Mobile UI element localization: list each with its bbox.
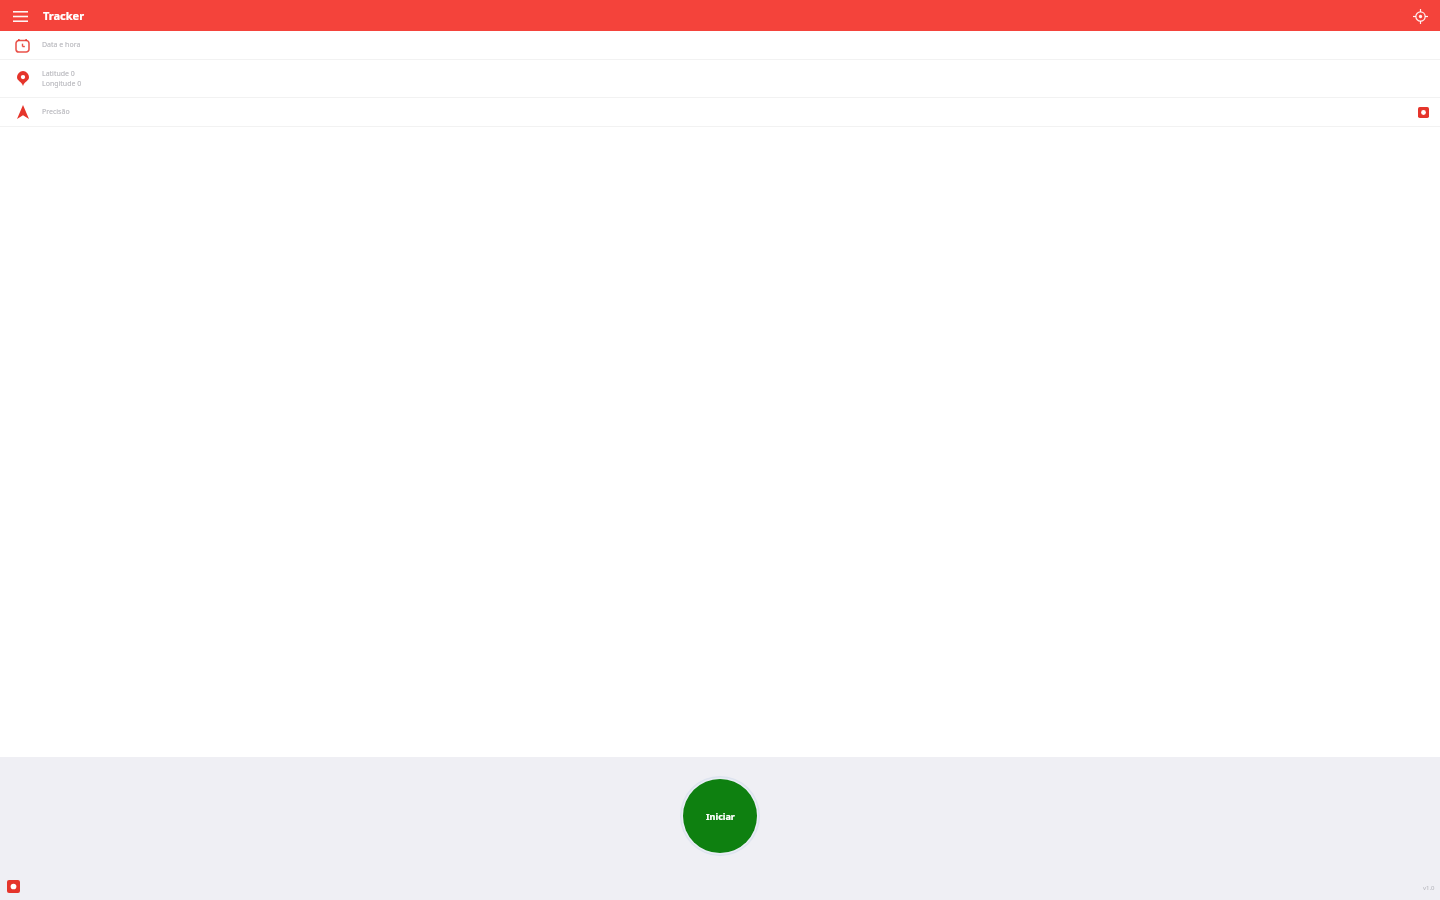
- button[interactable]: Status: [5, 878, 21, 894]
- staticText: Latitude 0: [42, 69, 75, 79]
- staticText: v1.0: [1423, 884, 1435, 892]
- staticText: Iniciar: [706, 810, 735, 822]
- button[interactable]: Menu: [10, 6, 30, 26]
- staticText: Tracker: [43, 8, 85, 23]
- button[interactable]: Precisão: [0, 98, 1440, 126]
- staticText: Longitude 0: [42, 79, 82, 89]
- button[interactable]: Data e hora: [0, 31, 1440, 59]
- staticText: Precisão: [42, 107, 70, 117]
- button[interactable]: Iniciar: [683, 779, 757, 853]
- button[interactable]: Latitude 0: [0, 60, 1440, 97]
- button[interactable]: Minha localização: [1410, 6, 1430, 26]
- staticText: Data e hora: [42, 40, 81, 50]
- button[interactable]: Gravar: [1415, 104, 1431, 120]
